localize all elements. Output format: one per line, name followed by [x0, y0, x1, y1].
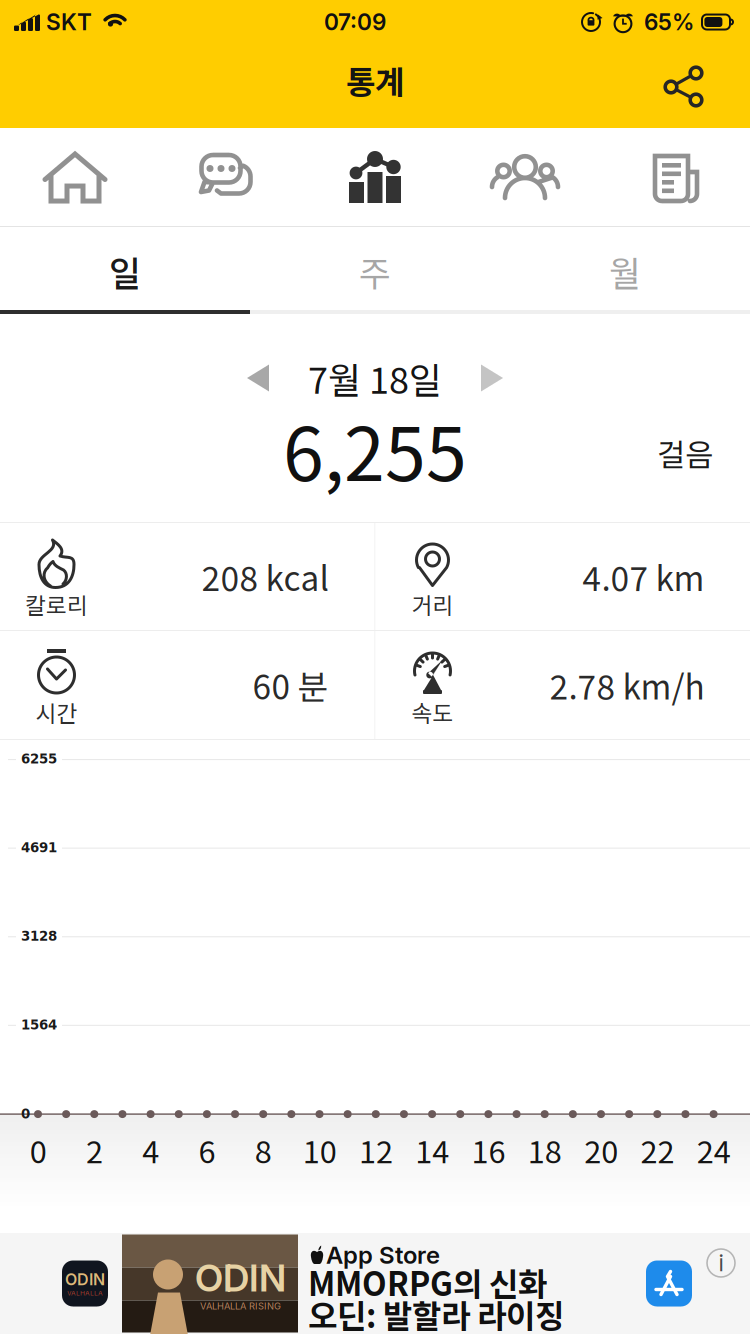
staticText: VALHALLA [67, 1289, 103, 1297]
button[interactable]: Home [0, 141, 150, 213]
staticText: 4.07 km [582, 552, 704, 601]
staticText: 208 kcal [201, 552, 328, 601]
staticText: 24 [697, 1128, 731, 1172]
staticText: 16 [472, 1128, 506, 1172]
button[interactable]: 시간 [0, 631, 374, 739]
staticText: 시간 [35, 696, 77, 728]
button[interactable]: Share [656, 58, 712, 114]
button[interactable]: Previous day [231, 354, 287, 402]
staticText: 일 [109, 246, 141, 297]
staticText: 14 [415, 1128, 449, 1172]
staticText: 월 [609, 246, 641, 297]
staticText: 6,255 [283, 396, 467, 502]
staticText: 6255 [21, 751, 57, 767]
staticText: 거리 [411, 588, 453, 620]
staticText: 3128 [21, 928, 57, 944]
button[interactable]: Ad information [704, 1246, 738, 1280]
staticText: ODIN [195, 1255, 286, 1300]
staticText: 1564 [21, 1017, 57, 1032]
staticText: 2 [86, 1128, 103, 1172]
staticText: 칼로리 [25, 588, 88, 620]
staticText: SKT [46, 8, 92, 36]
staticText: 4 [142, 1128, 159, 1172]
staticText: 속도 [411, 696, 453, 728]
staticText: 65% [644, 8, 694, 36]
staticText: 12 [359, 1128, 393, 1172]
staticText: i [718, 1249, 723, 1277]
staticText: 7월 18일 [308, 352, 442, 404]
staticText: App Store [326, 1240, 440, 1269]
button[interactable]: Next day [463, 354, 519, 402]
staticText: 0 [21, 1106, 30, 1122]
staticText: 07:09 [324, 8, 386, 36]
button[interactable]: News [600, 141, 750, 213]
staticText: 걸음 [657, 431, 713, 475]
button[interactable]: 칼로리 [0, 523, 374, 630]
staticText: 20 [584, 1128, 618, 1172]
staticText: VALHALLA RISING [200, 1300, 281, 1312]
button[interactable]: 거리 [375, 523, 750, 630]
button[interactable]: Chat [150, 141, 300, 213]
staticText: 통계 [346, 57, 404, 103]
staticText: 오딘: 발할라 라이징 [308, 1291, 564, 1334]
staticText: 0 [30, 1128, 47, 1172]
button[interactable]: ODIN [0, 1233, 750, 1334]
staticText: 18 [528, 1128, 562, 1172]
staticText: 2.78 km/h [549, 661, 704, 709]
button[interactable]: Friends [450, 141, 600, 213]
staticText: 6 [198, 1128, 215, 1172]
staticText: ODIN [65, 1270, 105, 1289]
button[interactable]: 월 [500, 229, 750, 314]
button[interactable]: 주 [250, 229, 500, 314]
staticText: 주 [359, 246, 391, 297]
staticText: MMORPG의 신화 [308, 1259, 547, 1305]
staticText: 4691 [21, 840, 57, 855]
staticText: 60 분 [252, 661, 328, 709]
button[interactable]: Statistics [300, 141, 450, 213]
staticText: 22 [640, 1128, 674, 1172]
staticText: 8 [255, 1128, 272, 1172]
button[interactable]: 일 [0, 229, 250, 314]
staticText: 10 [303, 1128, 337, 1172]
button[interactable]: 속도 [375, 631, 750, 739]
